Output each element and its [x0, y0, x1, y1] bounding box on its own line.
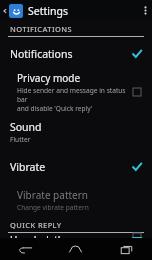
- staticText: Notifications: [10, 47, 73, 61]
- button[interactable]: Use dark theme: [0, 233, 152, 238]
- staticText: QUICK REPLY: [10, 220, 62, 230]
- button[interactable]: Home: [50, 238, 101, 260]
- staticText: Vibrate pattern: [17, 188, 89, 202]
- other: QuickMessage icon: [9, 4, 23, 18]
- staticText: Use dark theme: [10, 233, 85, 238]
- staticText: Privacy mode: [17, 71, 81, 85]
- staticText: Hide sender and message in status bar an…: [17, 86, 126, 113]
- staticText: NOTIFICATIONS: [10, 24, 73, 34]
- button[interactable]: Recent apps: [101, 238, 152, 260]
- button[interactable]: Sound: [0, 113, 152, 151]
- staticText: Vibrate: [10, 160, 46, 174]
- button[interactable]: More options: [138, 0, 152, 21]
- staticText: Sound: [10, 120, 42, 134]
- button[interactable]: Privacy mode: [0, 71, 152, 113]
- staticText: Settings: [28, 4, 68, 18]
- button[interactable]: Notifications: [0, 37, 152, 71]
- button[interactable]: Back: [0, 238, 50, 260]
- button[interactable]: Vibrate pattern: [0, 183, 152, 217]
- button[interactable]: Navigate up: [0, 0, 9, 21]
- button[interactable]: Vibrate: [0, 151, 152, 183]
- staticText: Change vibrate pattern: [17, 203, 89, 212]
- staticText: Flutter: [10, 135, 31, 144]
